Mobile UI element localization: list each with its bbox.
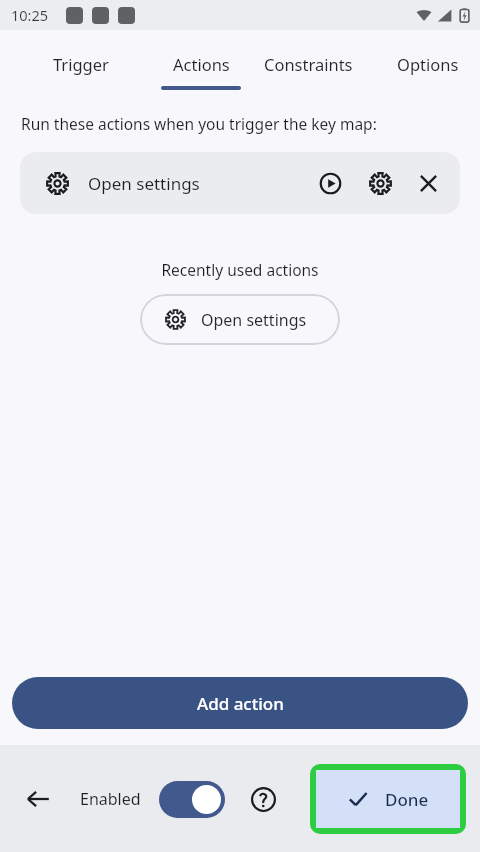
staticText: Actions [173,53,230,75]
button[interactable]: Enabled toggle [159,781,225,818]
button[interactable]: Action settings [360,163,400,203]
button[interactable]: Back [16,777,60,821]
button[interactable]: Options [376,30,480,93]
button[interactable]: Add action [12,677,468,729]
staticText: Add action [197,692,284,715]
staticText: Options [397,53,459,75]
staticText: Open settings [201,309,307,331]
staticText: Constraints [264,53,353,75]
button[interactable]: Test action [310,163,350,203]
button[interactable]: Help [243,779,283,819]
button[interactable]: Remove action [408,163,448,203]
staticText: Recently used actions [0,259,480,280]
button[interactable]: Open settings [20,152,460,214]
staticText: Enabled [80,788,141,810]
staticText: 10:25 [11,5,49,25]
button[interactable]: Done [316,770,460,828]
button[interactable]: Open settings [140,294,340,345]
staticText: Run these actions when you trigger the k… [21,113,377,134]
staticText: Done [385,788,429,811]
staticText: Trigger [53,53,109,75]
button[interactable]: Actions [161,30,241,93]
staticText: Open settings [88,172,200,195]
button[interactable]: Constraints [241,30,376,93]
button[interactable]: Trigger [0,30,161,93]
